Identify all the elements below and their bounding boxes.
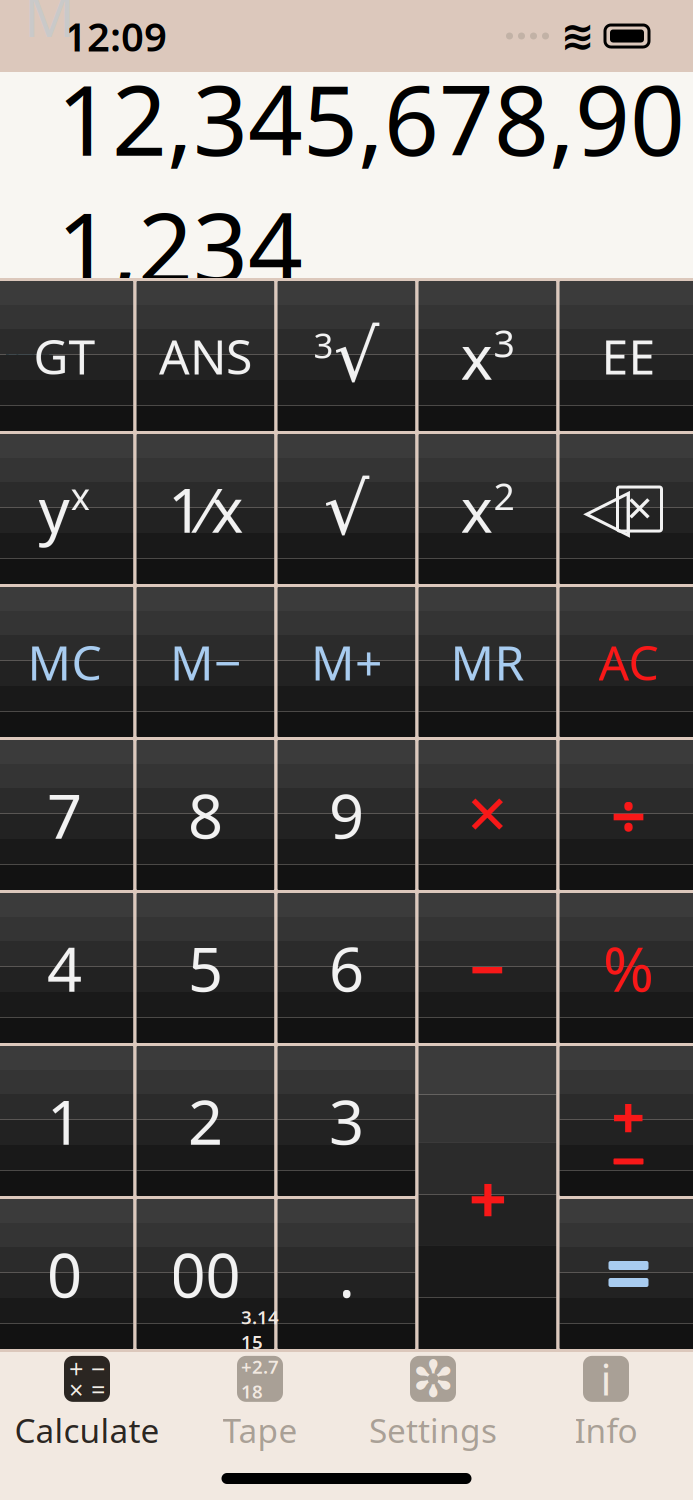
button[interactable]: 00 [136,1199,274,1349]
staticText: 3 [313,322,333,368]
button[interactable]: Plus [418,1046,556,1349]
staticText: 12:09 [64,9,167,62]
staticText: % [603,927,654,1009]
staticText: + [611,1077,645,1155]
staticText: AC [598,630,658,694]
button[interactable]: Decimal point [277,1199,415,1349]
staticText: x [460,468,492,550]
button[interactable]: 5 [136,893,274,1043]
staticText: Tape [222,1408,297,1452]
staticText: M+ [311,630,382,694]
staticText: ✕ [625,489,654,529]
staticText: 2 [493,471,514,521]
button[interactable]: x squared [418,434,556,584]
button[interactable]: y to the x [0,434,133,584]
staticText: √ [333,315,379,397]
staticText: − [91,1351,105,1385]
staticText: . [338,1233,354,1315]
staticText: Calculate [14,1408,159,1452]
button[interactable]: Memory recall [418,587,556,737]
staticText: 3 [329,1080,364,1162]
button[interactable]: All clear [559,587,693,737]
button[interactable]: Grand total [0,281,133,431]
button[interactable]: Multiply [418,740,556,890]
staticText: ≋ [561,13,595,59]
button[interactable]: Memory clear [0,587,133,737]
staticText: 🔊 [2,309,68,370]
button[interactable]: 0 [0,1199,133,1349]
staticText: MC [27,630,101,694]
staticText: i [600,1350,611,1407]
button[interactable]: Sound [0,314,70,366]
button[interactable]: Equals [559,1199,693,1349]
button[interactable]: Divide [559,740,693,890]
staticText: = 5.86 [241,1404,279,1453]
staticText: Info [574,1408,637,1452]
button[interactable]: 1 [0,1046,133,1196]
staticText: y [38,468,69,550]
staticText: ÷ [611,774,646,856]
button[interactable]: ✻ [346,1358,519,1450]
button[interactable]: one over x [136,434,274,584]
button[interactable]: Exponent [559,281,693,431]
button[interactable]: Percent [559,893,693,1043]
staticText: +2.718 [241,1354,279,1404]
button[interactable]: Memory minus [136,587,274,737]
button[interactable]: 7 [0,740,133,890]
staticText: 1⁄x [168,468,243,550]
staticText: MR [450,630,524,694]
staticText: M [24,0,75,53]
staticText: x [70,471,90,521]
button[interactable]: 3.1415 [173,1358,346,1450]
button[interactable]: 4 [0,893,133,1043]
staticText: 3 [493,318,514,368]
button[interactable]: 6 [277,893,415,1043]
staticText: 00 [170,1233,240,1315]
staticText: 6 [329,927,364,1009]
button[interactable]: Memory plus [277,587,415,737]
staticText: Settings [369,1408,497,1452]
staticText: 0 [47,1233,82,1315]
button[interactable]: Cube root [277,281,415,431]
staticText: 3.1415 [241,1304,279,1354]
staticText: × [69,1372,83,1406]
button[interactable]: x cubed [418,281,556,431]
staticText: ✻ [412,1350,454,1408]
button[interactable]: Backspace [559,434,693,584]
staticText: ✕ [465,785,510,845]
button[interactable]: 3 [277,1046,415,1196]
staticText: 4 [47,927,82,1009]
staticText: √ [323,468,369,550]
button[interactable]: Answer [136,281,274,431]
staticText: M− [170,630,241,694]
staticText: GT [33,324,95,388]
staticText: 12,345,678,901,234 [57,55,685,310]
button[interactable]: Plus or minus [559,1046,693,1196]
staticText: + [468,1153,506,1242]
staticText: = [91,1372,105,1406]
staticText: ANS [159,324,252,388]
staticText: 2 [188,1080,223,1162]
staticText: 8 [188,774,223,856]
staticText: + [69,1351,83,1385]
button[interactable]: + [0,1358,173,1450]
button[interactable]: Square root [277,434,415,584]
button[interactable]: 8 [136,740,274,890]
staticText: 7 [47,774,82,856]
staticText: 1 [47,1080,82,1162]
staticText: EE [601,324,655,388]
staticText: 9 [329,774,364,856]
button[interactable]: 2 [136,1046,274,1196]
button[interactable]: Minus [418,893,556,1043]
staticText: x [460,315,492,397]
button[interactable]: 9 [277,740,415,890]
staticText: ◁ [583,474,630,544]
button[interactable]: i [519,1358,692,1450]
staticText: 5 [188,927,223,1009]
staticText: − [469,927,505,1009]
